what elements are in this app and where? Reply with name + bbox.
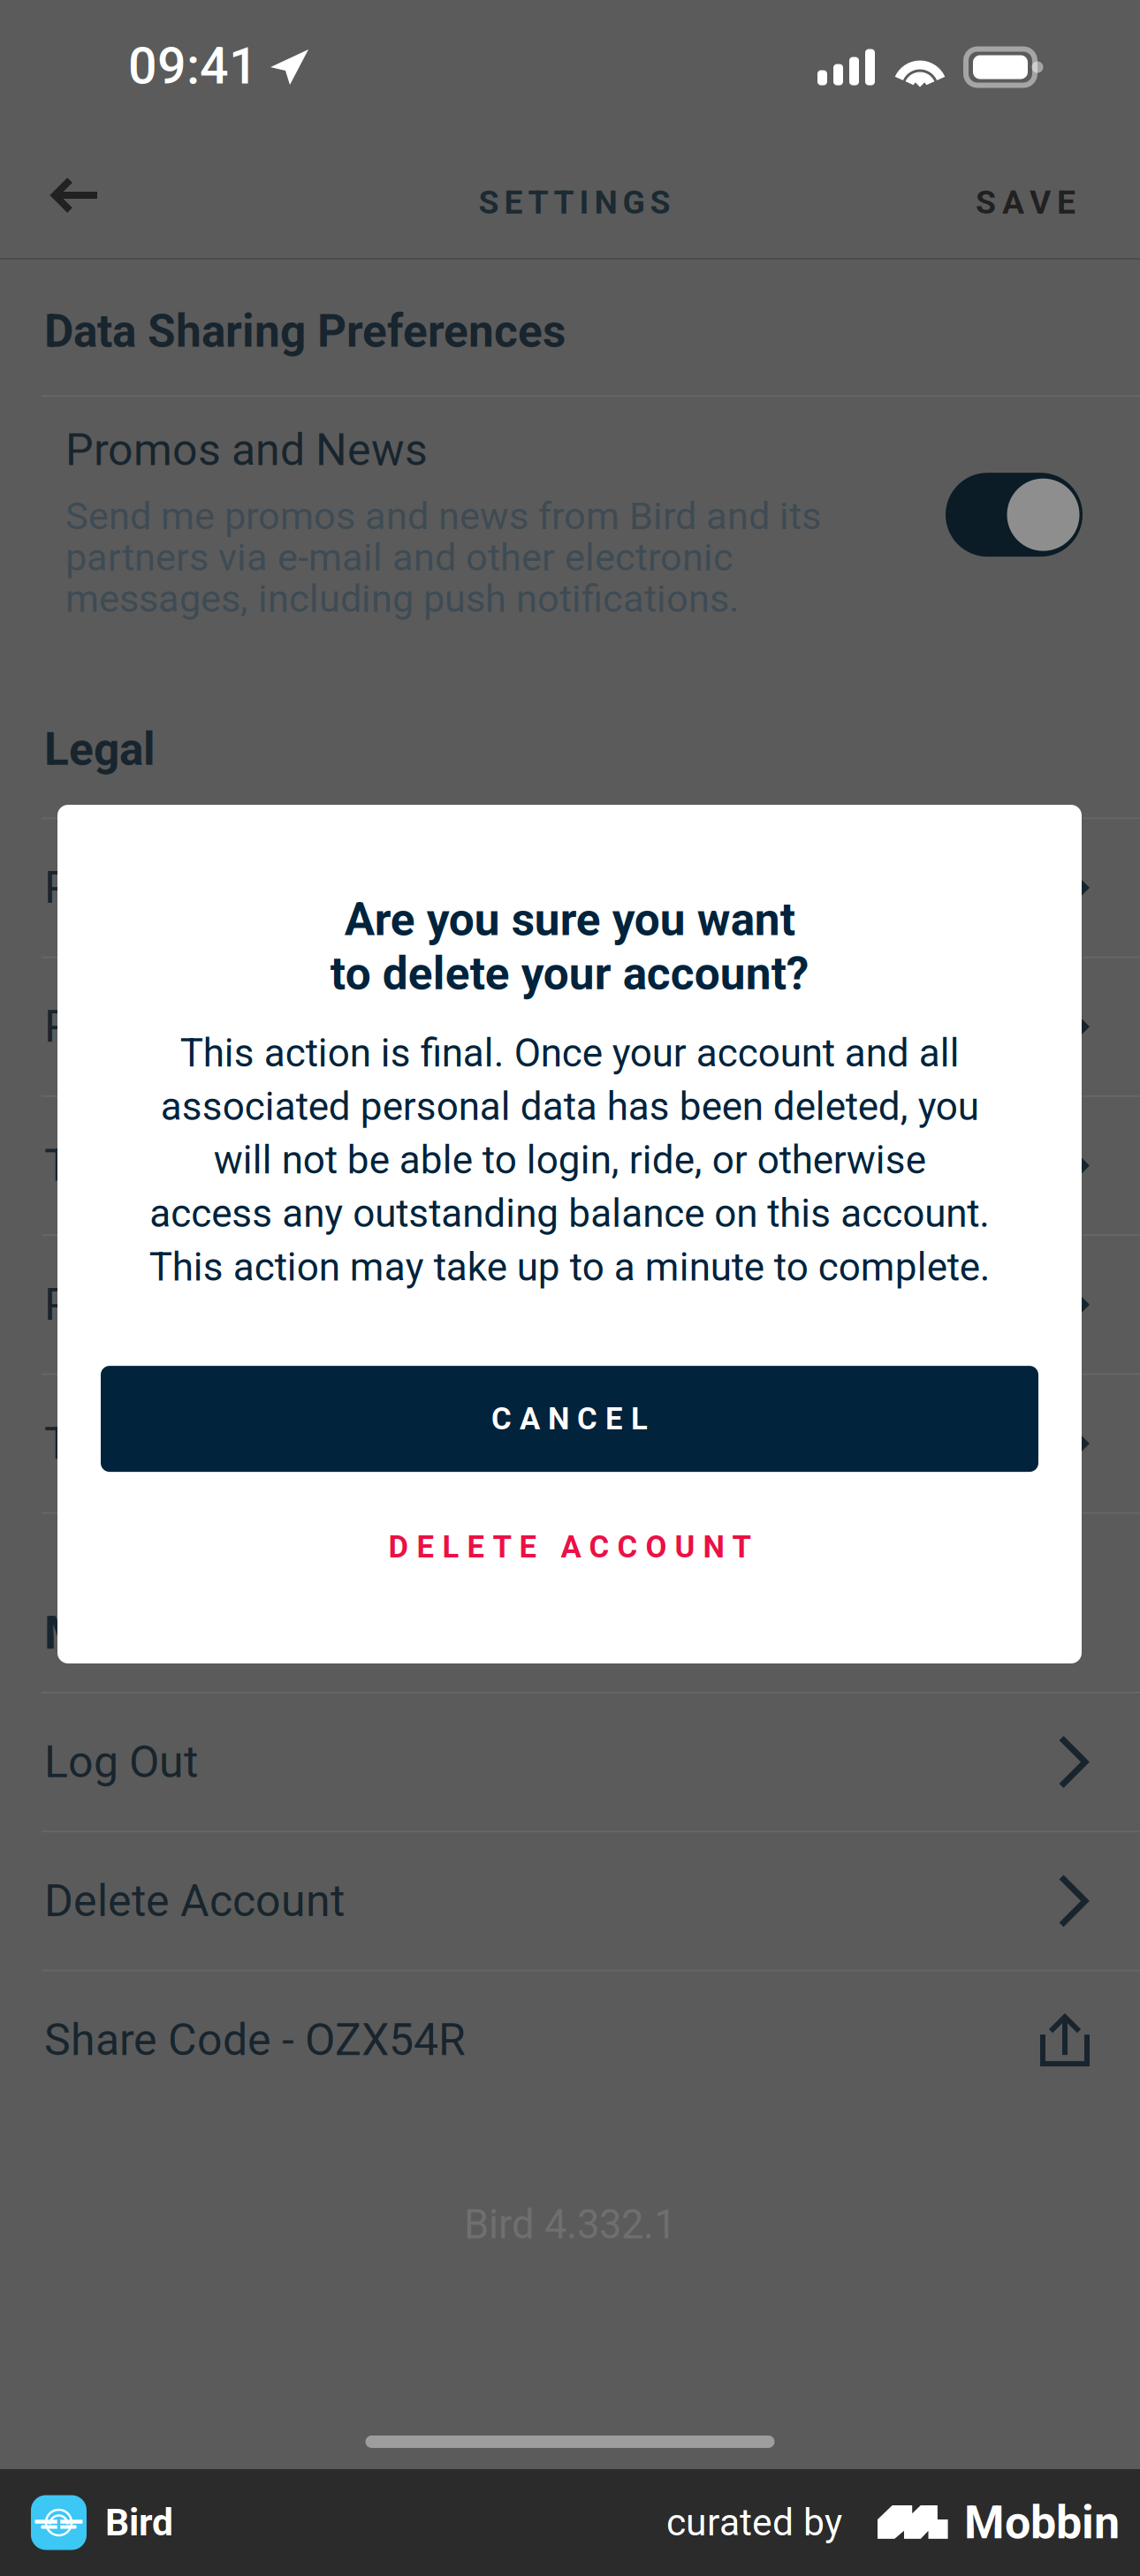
staticText: Terms of Service xyxy=(44,1140,375,1192)
staticText: Promos and News xyxy=(65,424,428,476)
staticText: Privacy Policy xyxy=(44,862,316,914)
staticText: Rider Rules xyxy=(44,1001,266,1053)
button[interactable]: Back xyxy=(0,133,136,258)
staticText: Data Sharing Preferences xyxy=(44,305,566,358)
button[interactable]: DELETE ACCOUNT xyxy=(101,1504,1038,1590)
button[interactable]: SAVE xyxy=(932,133,1140,258)
button[interactable]: Share Code - OZX54R xyxy=(0,1971,1140,2109)
staticText: Privacy Choices xyxy=(44,1279,358,1330)
button[interactable]: Delete Account xyxy=(0,1832,1140,1970)
staticText: Share Code - OZX54R xyxy=(44,2014,466,2066)
staticText: Bird 4.332.1 xyxy=(464,2201,676,2248)
staticText: Log Out xyxy=(44,1736,198,1788)
staticText: Delete Account xyxy=(44,1875,345,1927)
staticText: SAVE xyxy=(976,183,1075,222)
staticText: curated by xyxy=(666,2500,842,2545)
button[interactable]: Third Party Licenses xyxy=(0,1375,1140,1512)
button[interactable]: Privacy Policy xyxy=(0,819,1140,956)
button[interactable]: Privacy Choices xyxy=(0,1236,1140,1373)
button[interactable]: CANCEL xyxy=(101,1366,1038,1472)
button[interactable]: Terms of Service xyxy=(0,1097,1140,1234)
staticText: SETTINGS xyxy=(479,183,670,222)
staticText: Legal xyxy=(44,723,156,776)
staticText: Send me promos and news from Bird and it… xyxy=(65,494,821,621)
staticText: Third Party Licenses xyxy=(44,1418,445,1469)
staticText: My Account xyxy=(44,1607,288,1660)
staticText: Are you sure you want to delete your acc… xyxy=(330,893,809,1000)
staticText: Bird xyxy=(105,2500,173,2545)
staticText: DELETE ACCOUNT xyxy=(388,1529,751,1565)
staticText: CANCEL xyxy=(491,1401,648,1437)
button[interactable]: Rider Rules xyxy=(0,958,1140,1095)
staticText: 09:41 xyxy=(128,37,258,96)
staticText: This action is final. Once your account … xyxy=(149,1030,990,1290)
button[interactable]: Promos and News xyxy=(0,397,1140,609)
button[interactable]: Log Out xyxy=(0,1693,1140,1831)
staticText: Mobbin xyxy=(964,2496,1120,2549)
